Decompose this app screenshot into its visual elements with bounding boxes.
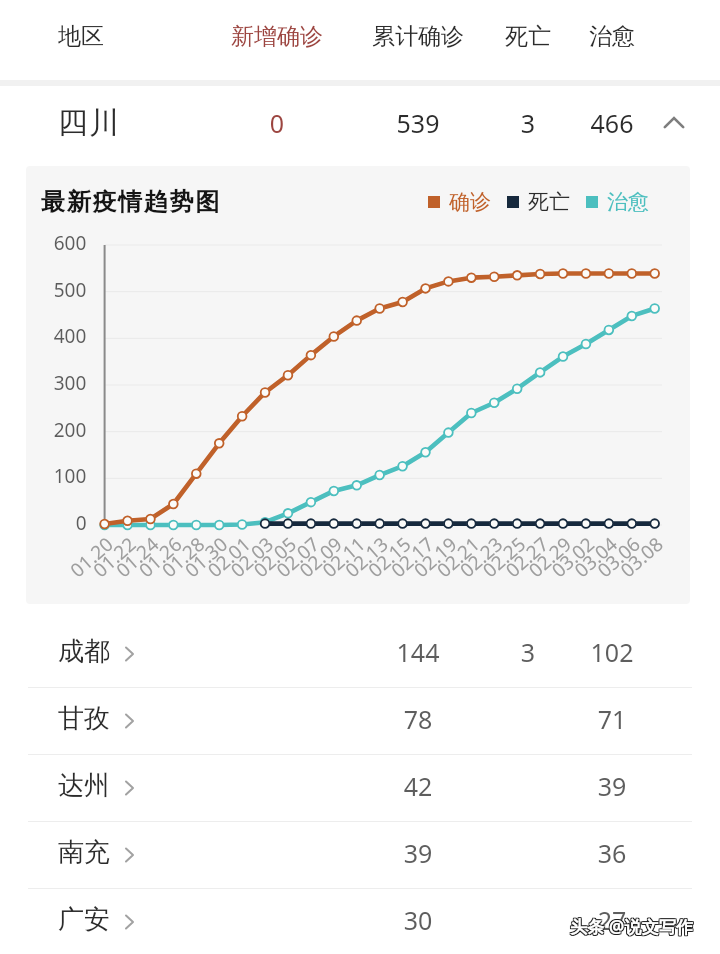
staticText: 治愈 [512, 22, 712, 51]
staticText: 36 [512, 836, 712, 870]
staticText: 30 [318, 903, 518, 937]
staticText: 头条 @说文写作 [571, 916, 695, 939]
staticText: 27 [512, 903, 712, 937]
staticText: 头条 @说文写作 [571, 914, 695, 937]
button[interactable]: 达州 [0, 755, 720, 822]
staticText: 539 [318, 106, 518, 140]
staticText: 39 [318, 836, 518, 870]
staticText: 3 [428, 106, 628, 140]
staticText: 成都 [58, 635, 110, 668]
staticText: 头条 @说文写作 [571, 915, 695, 938]
staticText: 达州 [58, 769, 110, 802]
staticText: 102 [512, 635, 712, 669]
staticText: 头条 @说文写作 [570, 916, 694, 939]
staticText: 累计确诊 [318, 22, 518, 51]
staticText: 广安 [58, 903, 110, 936]
staticText: 最新疫情趋势图 [41, 187, 221, 217]
staticText: 死亡 [428, 22, 628, 51]
staticText: 头条 @说文写作 [569, 914, 693, 937]
staticText: 确诊 [449, 189, 491, 215]
staticText: 死亡 [528, 189, 570, 215]
button[interactable]: 四川 [0, 86, 720, 166]
staticText: 144 [318, 635, 518, 669]
button[interactable]: 广安 [0, 889, 720, 954]
staticText: 甘孜 [58, 702, 110, 735]
staticText: 71 [512, 702, 712, 736]
staticText: 头条 @说文写作 [569, 915, 693, 938]
staticText: 头条 @说文写作 [569, 916, 693, 939]
staticText: 地区 [58, 22, 104, 51]
button[interactable]: 南充 [0, 822, 720, 889]
staticText: 78 [318, 702, 518, 736]
staticText: 3 [428, 635, 628, 669]
staticText: 0 [177, 106, 377, 140]
staticText: 治愈 [607, 189, 649, 215]
staticText: 四川 [57, 104, 120, 142]
staticText: 新增确诊 [177, 22, 377, 51]
staticText: 42 [318, 769, 518, 803]
button[interactable]: 成都 [0, 621, 720, 688]
staticText: 头条 @说文写作 [570, 914, 694, 937]
staticText: 南充 [58, 836, 110, 869]
staticText: 466 [512, 106, 712, 140]
staticText: 头条 @说文写作 [570, 915, 694, 938]
button[interactable]: 甘孜 [0, 688, 720, 755]
other: 收起 [658, 107, 690, 139]
staticText: 39 [512, 769, 712, 803]
